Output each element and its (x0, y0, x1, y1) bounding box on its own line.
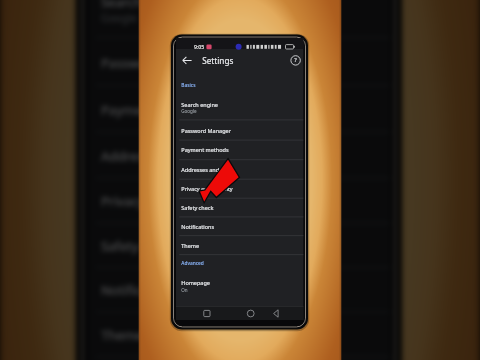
button[interactable] (0, 0, 480, 360)
